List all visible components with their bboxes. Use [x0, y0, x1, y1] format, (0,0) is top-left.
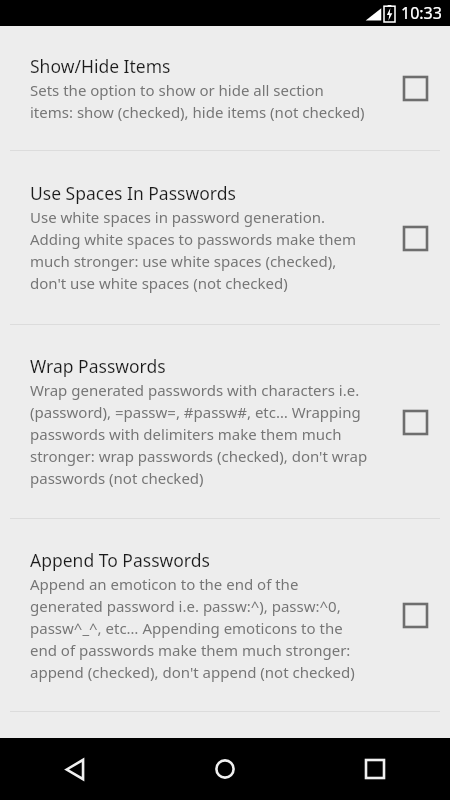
button[interactable]: Append To Passwords [0, 519, 450, 711]
staticText: Wrap generated passwords with characters… [30, 380, 370, 489]
button[interactable]: Recent apps [300, 738, 450, 800]
staticText: Append an emoticon to the end of the gen… [30, 574, 370, 683]
staticText: Wrap Passwords [30, 354, 166, 378]
button[interactable]: Back [0, 738, 150, 800]
button[interactable]: Toggle checkbox [393, 216, 437, 260]
staticText: Append To Passwords [30, 548, 210, 572]
button[interactable]: Toggle checkbox [393, 593, 437, 637]
button[interactable]: Show/Hide Items [0, 26, 450, 150]
staticText: 10:33 [401, 2, 442, 24]
staticText: Use white spaces in password generation.… [30, 207, 370, 294]
button[interactable]: Toggle checkbox [393, 66, 437, 110]
button[interactable]: Wrap Passwords [0, 325, 450, 518]
staticText: Use Spaces In Passwords [30, 181, 236, 205]
button[interactable]: Use Spaces In Passwords [0, 151, 450, 324]
staticText: Sets the option to show or hide all sect… [30, 80, 370, 123]
button[interactable]: Home [150, 738, 300, 800]
staticText: Show/Hide Items [30, 54, 171, 78]
button[interactable]: Toggle checkbox [393, 400, 437, 444]
